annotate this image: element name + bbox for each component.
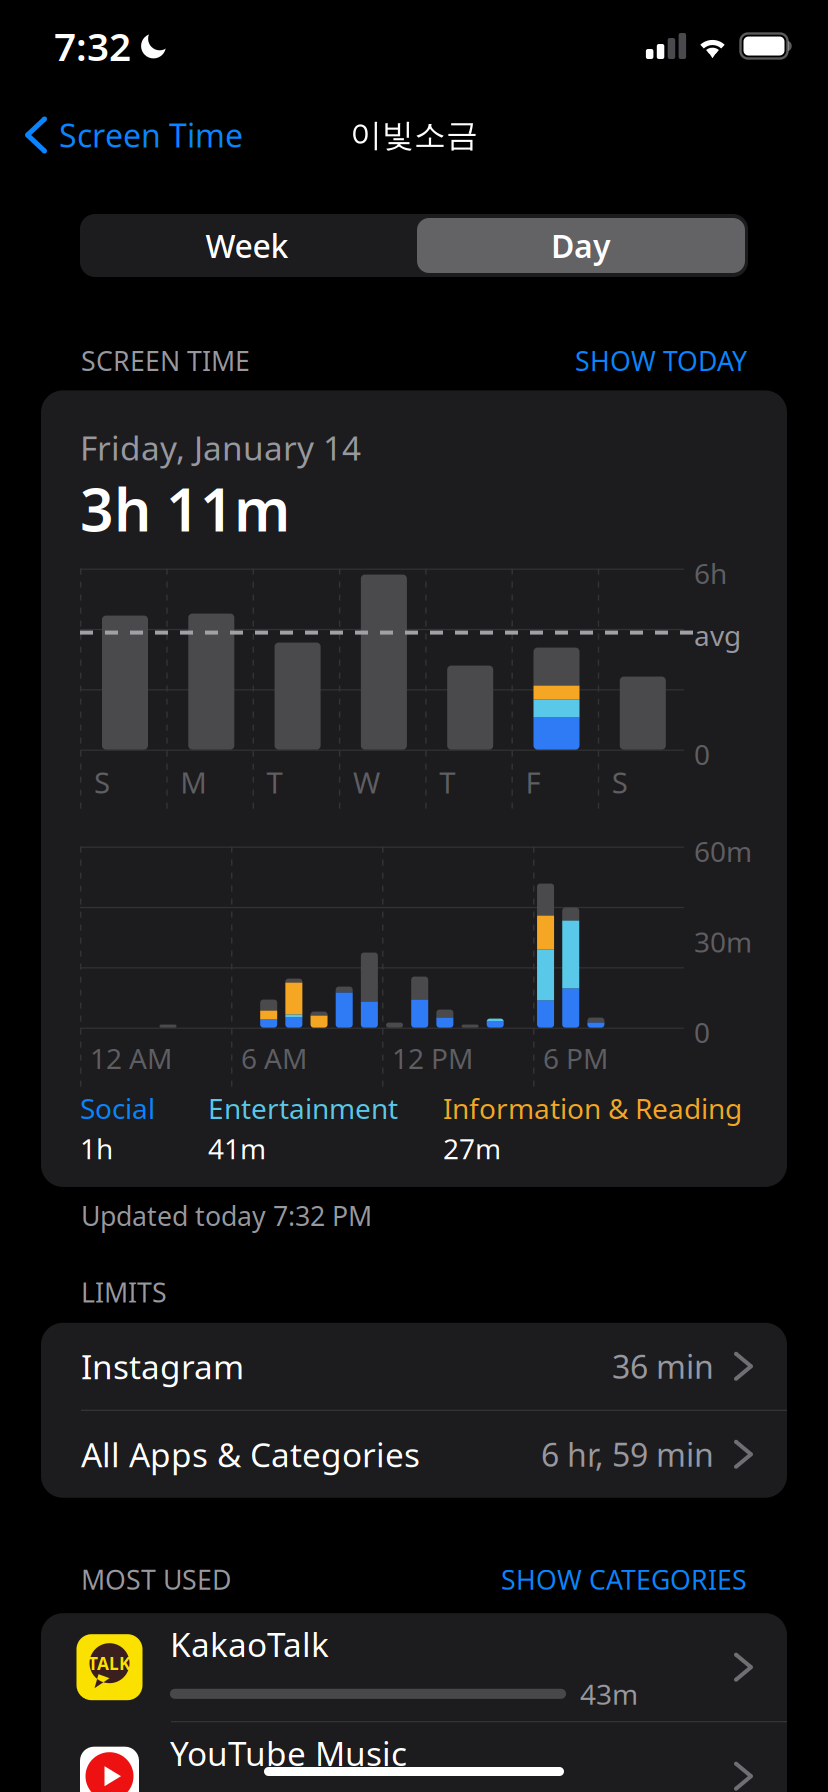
staticText: 6 hr, 59 min <box>541 1433 714 1475</box>
staticText: T <box>439 763 455 802</box>
staticText: Day <box>551 224 611 267</box>
staticText: 12 AM <box>90 1040 172 1077</box>
staticText: 36 min <box>612 1345 714 1387</box>
staticText: Instagram <box>81 1344 244 1388</box>
staticText: 43m <box>580 1675 638 1712</box>
staticText: 3h 11m <box>80 470 290 548</box>
staticText: F <box>525 763 540 802</box>
button[interactable]: Screen Time <box>0 104 257 166</box>
staticText: 27m <box>443 1130 501 1167</box>
staticText: 6 AM <box>241 1040 307 1077</box>
button[interactable]: Week <box>80 214 414 277</box>
staticText: avg <box>694 617 741 654</box>
button[interactable]: Instagram <box>41 1323 787 1411</box>
staticText: W <box>353 763 380 802</box>
staticText: 7:32 <box>54 20 131 72</box>
button[interactable]: Day <box>414 214 748 277</box>
staticText: SHOW TODAY <box>575 343 747 378</box>
staticText: 41m <box>208 1130 266 1167</box>
staticText: T <box>267 763 283 802</box>
staticText: 60m <box>694 833 752 870</box>
button[interactable]: All Apps & Categories <box>41 1411 787 1498</box>
staticText: S <box>94 763 110 802</box>
staticText: Entertainment <box>208 1090 398 1127</box>
staticText: YouTube Music <box>170 1731 407 1775</box>
staticText: LIMITS <box>81 1274 167 1310</box>
staticText: SHOW CATEGORIES <box>501 1562 747 1597</box>
button[interactable]: SHOW TODAY <box>575 343 747 378</box>
button[interactable]: SHOW CATEGORIES <box>501 1562 747 1597</box>
staticText: Social <box>80 1090 155 1127</box>
staticText: SCREEN TIME <box>81 343 250 378</box>
staticText: 0 <box>694 1014 710 1051</box>
staticText: Updated today 7:32 PM <box>81 1198 372 1233</box>
staticText: 6 PM <box>543 1040 608 1077</box>
staticText: Friday, January 14 <box>80 425 361 470</box>
button[interactable]: YouTube Music <box>41 1722 787 1792</box>
staticText: S <box>612 763 628 802</box>
staticText: 12 PM <box>392 1040 473 1077</box>
staticText: M <box>180 763 207 802</box>
staticText: 0 <box>694 736 710 773</box>
staticText: Screen Time <box>59 114 243 156</box>
button[interactable]: TALK <box>41 1613 787 1722</box>
staticText: TALK <box>88 1652 131 1675</box>
staticText: KakaoTalk <box>170 1622 329 1666</box>
staticText: 이빛소금 <box>350 115 478 155</box>
staticText: Week <box>205 224 288 267</box>
staticText: Information & Reading <box>443 1090 742 1127</box>
staticText: 30m <box>694 923 752 960</box>
staticText: All Apps & Categories <box>81 1432 420 1476</box>
staticText: MOST USED <box>81 1562 231 1597</box>
staticText: 1h <box>80 1130 113 1167</box>
staticText: 6h <box>694 555 727 592</box>
